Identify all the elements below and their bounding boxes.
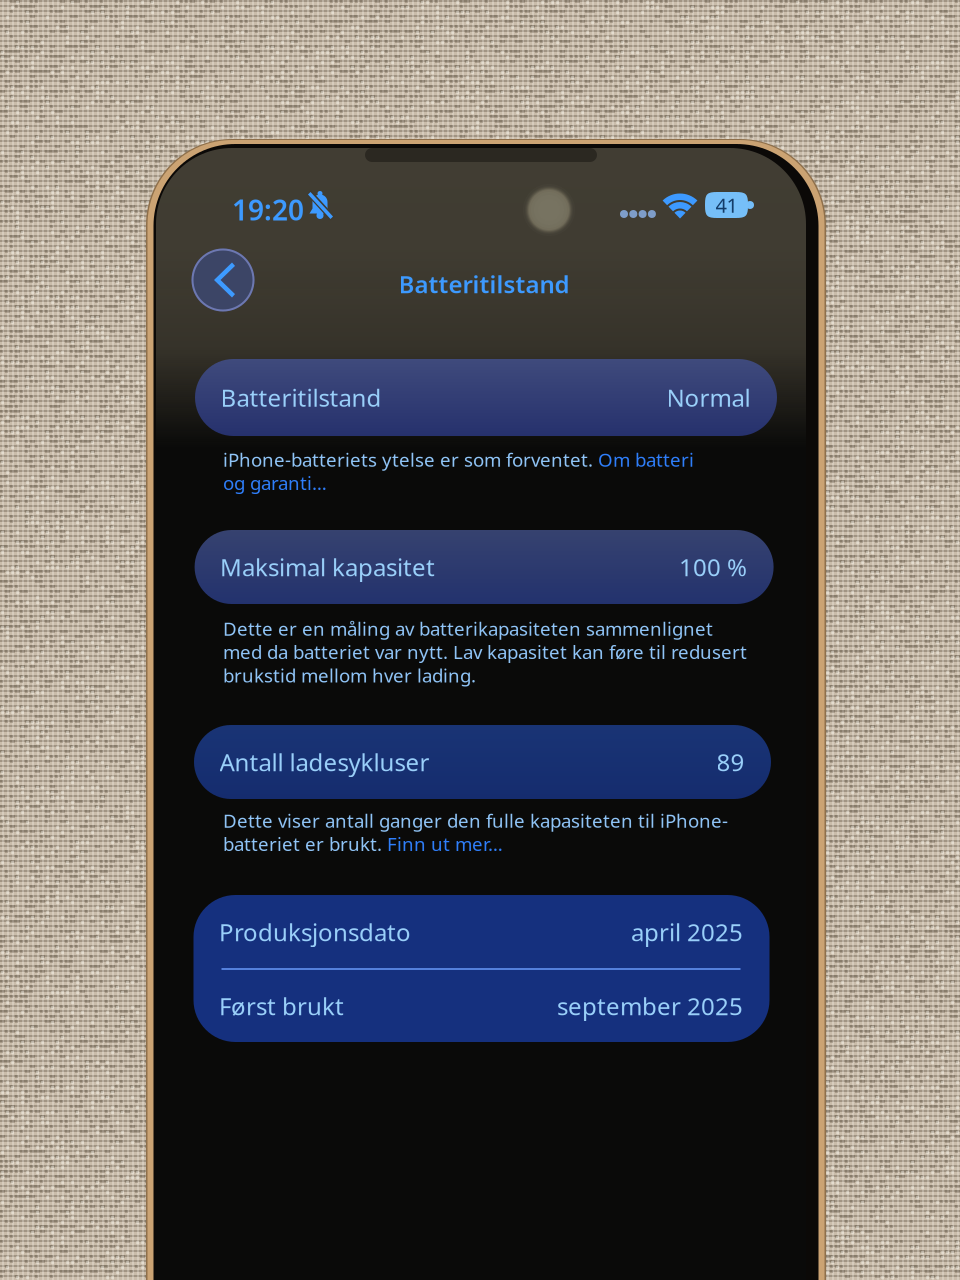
staticText: september 2025 [557,990,743,1022]
staticText: Antall ladesykluser [219,746,429,778]
button[interactable]: Batteritilstand [195,359,777,436]
button[interactable]: Back [191,248,254,311]
staticText: 19:20 [232,191,304,228]
staticText: Om batteri [598,447,694,472]
button[interactable]: Først brukt [193,970,769,1042]
staticText: og garanti… [223,470,327,495]
staticText: iPhone-batteriets ytelse er som forvente… [223,447,598,472]
staticText: Produksjonsdato [219,916,411,948]
staticText: Batteritilstand [398,268,569,300]
button[interactable]: Produksjonsdato [193,895,769,969]
staticText: Dette viser antall ganger den fulle kapa… [223,808,728,833]
staticText: Finn ut mer… [387,831,503,856]
button[interactable]: Maksimal kapasitet [195,530,774,604]
staticText: Dette er en måling av batterikapasiteten… [223,616,713,641]
staticText: med da batteriet var nytt. Lav kapasitet… [223,639,747,664]
staticText: Normal [666,382,750,413]
staticText: Batteritilstand [220,382,381,413]
staticText: 100 % [679,551,747,583]
staticText: Maksimal kapasitet [220,551,435,583]
staticText: 89 [716,746,744,778]
staticText: april 2025 [631,916,743,948]
staticText: batteriet er brukt. [223,831,387,856]
staticText: brukstid mellom hver lading. [223,663,476,688]
button[interactable]: Antall ladesykluser [194,725,771,799]
staticText: Først brukt [219,990,344,1022]
staticText: 41 [715,192,737,218]
